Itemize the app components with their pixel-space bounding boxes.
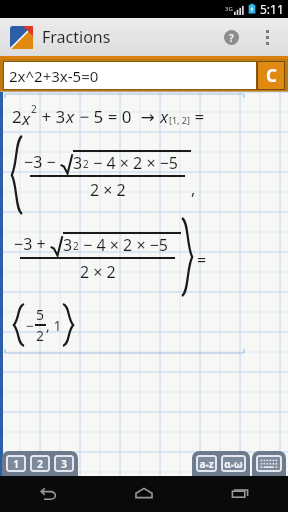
- staticText: 5:11: [260, 1, 284, 17]
- staticText: 2 × 2: [80, 261, 116, 283]
- button[interactable]: a-z: [199, 455, 214, 472]
- staticText: Fractions: [42, 26, 111, 48]
- button[interactable]: 3: [57, 455, 71, 472]
- staticText: 3G: [225, 5, 233, 13]
- staticText: −3 +: [14, 233, 50, 255]
- button[interactable]: C: [257, 61, 285, 90]
- staticText: α-ω: [224, 457, 243, 471]
- staticText: + 3: [37, 105, 66, 128]
- staticText: 1: [13, 457, 19, 471]
- button[interactable]: More options: [250, 20, 284, 54]
- staticText: 3: [61, 457, 67, 471]
- button[interactable]: Home: [96, 476, 192, 512]
- staticText: =: [197, 249, 207, 271]
- staticText: ?: [229, 31, 234, 45]
- staticText: [1, 2]: [169, 114, 190, 126]
- button[interactable]: 2x^2+3x-5=0: [3, 61, 257, 90]
- button[interactable]: Help: [212, 18, 250, 56]
- staticText: 2x^2+3x-5=0: [9, 66, 99, 86]
- staticText: 2: [83, 157, 89, 171]
- staticText: , 1: [46, 316, 62, 335]
- staticText: 2: [12, 105, 22, 128]
- staticText: −: [26, 316, 35, 335]
- staticText: 3: [63, 234, 73, 256]
- staticText: 3: [73, 152, 83, 174]
- staticText: C: [266, 64, 277, 87]
- button[interactable]: Back: [0, 476, 96, 512]
- staticText: x: [160, 105, 169, 128]
- staticText: 2 × 2: [90, 179, 126, 201]
- button[interactable]: Keyboard: [256, 455, 282, 472]
- staticText: 2: [37, 457, 43, 471]
- staticText: 2: [73, 239, 79, 253]
- staticText: =: [190, 105, 205, 128]
- staticText: 2: [36, 326, 45, 345]
- button[interactable]: 1: [9, 455, 23, 472]
- button[interactable]: 2: [33, 455, 47, 472]
- staticText: x: [66, 105, 75, 128]
- staticText: − 5 = 0 →: [75, 105, 160, 128]
- staticText: 5: [36, 305, 45, 324]
- button[interactable]: Recent apps: [192, 476, 288, 512]
- staticText: − 4 × 2 × −5: [79, 234, 169, 256]
- staticText: −3 −: [24, 151, 60, 173]
- staticText: x: [22, 107, 31, 130]
- staticText: 2: [31, 102, 37, 116]
- staticText: ,: [191, 178, 196, 200]
- button[interactable]: α-ω: [224, 455, 243, 472]
- staticText: a-z: [199, 457, 214, 471]
- staticText: − 4 × 2 × −5: [89, 152, 179, 174]
